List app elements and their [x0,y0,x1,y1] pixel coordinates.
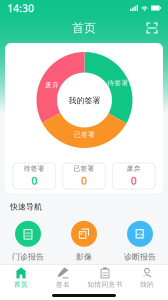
staticText: 首页 [72,21,96,35]
staticText: 0 [81,173,87,188]
button[interactable]: 废弃 [112,163,155,189]
staticText: 待签署 [107,79,128,87]
button[interactable]: 影像 [56,221,112,262]
staticText: 0 [31,173,37,188]
staticText: 签名 [56,280,70,289]
staticText: 首页 [14,280,28,289]
staticText: 门诊报告 [12,252,44,262]
staticText: 诊断报告 [124,252,156,262]
staticText: 14:30 [7,1,34,15]
button[interactable]: 已签署 [63,163,105,189]
button[interactable]: 我的 [126,265,168,291]
staticText: 0 [131,173,137,188]
staticText: 我的 [140,280,154,289]
staticText: 废弃 [45,81,59,89]
staticText: 知情同意书 [87,280,122,289]
button[interactable]: 签名 [42,265,84,291]
staticText: 快速导航 [10,202,42,212]
button[interactable]: 诊断报告 [112,221,168,262]
staticText: 已签署 [73,164,94,172]
button[interactable]: Scan [142,18,162,38]
staticText: 待签署 [24,164,45,172]
button[interactable]: 待签署 [13,163,56,189]
button[interactable]: 首页 [0,265,42,291]
staticText: 我的签署 [68,96,100,105]
staticText: 影像 [76,252,92,262]
staticText: 已签署 [74,130,95,139]
staticText: 废弃 [127,164,141,172]
button[interactable]: 知情同意书 [84,265,126,291]
button[interactable]: 门诊报告 [0,221,56,262]
